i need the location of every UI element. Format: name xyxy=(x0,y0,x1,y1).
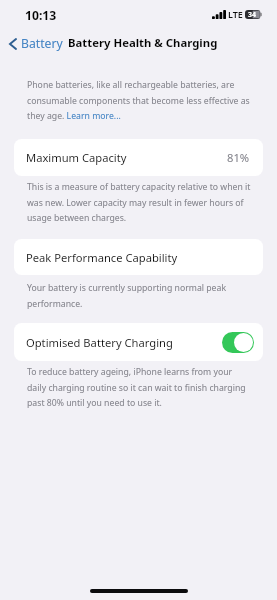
staticText: 34 xyxy=(248,10,257,19)
staticText: Maximum Capacity xyxy=(26,150,127,165)
staticText: Battery Health & Charging xyxy=(68,35,218,50)
button[interactable]: Optimised Battery Charging xyxy=(14,323,263,361)
button[interactable]: Battery xyxy=(0,32,67,55)
staticText: This is a measure of battery capacity re… xyxy=(27,181,253,223)
staticText: Peak Performance Capability xyxy=(26,250,178,265)
staticText: Phone batteries, like all rechargeable b… xyxy=(27,79,253,121)
staticText: To reduce battery ageing, iPhone learns … xyxy=(27,366,253,408)
staticText: Optimised Battery Charging xyxy=(26,335,173,350)
staticText: LTE xyxy=(228,8,243,20)
staticText: Your battery is currently supporting nor… xyxy=(27,282,253,309)
staticText: 81% xyxy=(227,150,250,165)
button[interactable]: Optimised Battery Charging toggle xyxy=(222,332,254,353)
button[interactable]: Peak Performance Capability xyxy=(14,239,263,275)
staticText: 10:13 xyxy=(25,7,57,24)
staticText: Battery xyxy=(21,35,63,52)
button[interactable]: Maximum Capacity xyxy=(14,139,263,176)
other: Battery 34 percent xyxy=(245,10,262,19)
